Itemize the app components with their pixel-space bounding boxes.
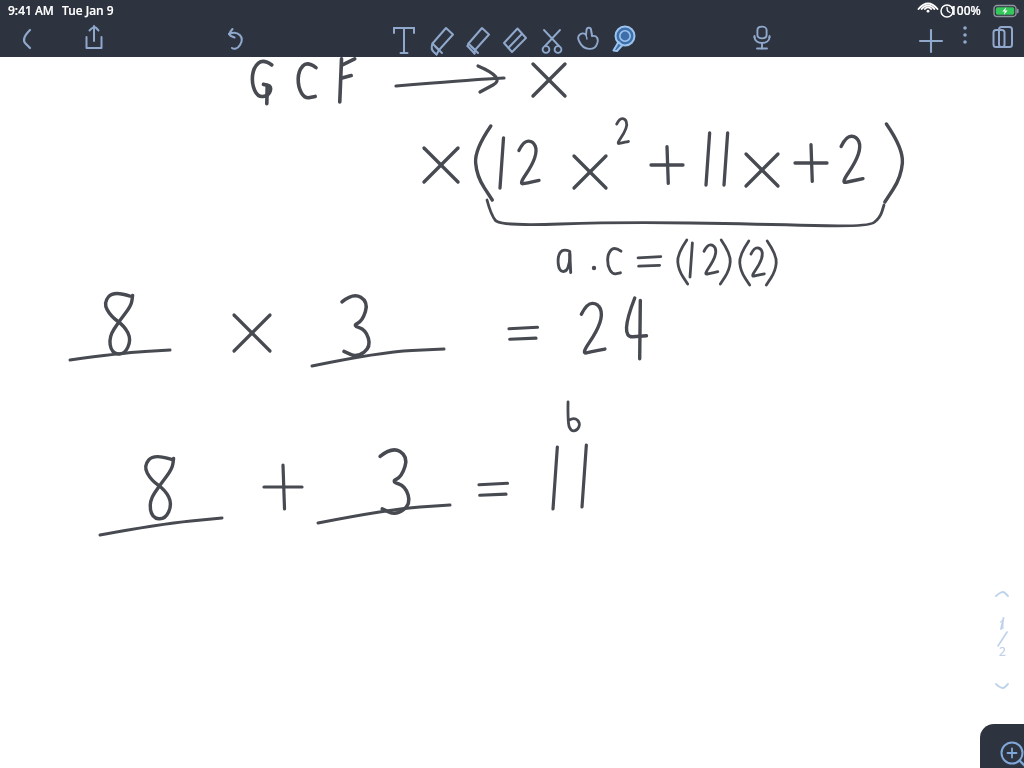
button[interactable]: Previous page — [986, 580, 1018, 608]
button[interactable]: Undo — [218, 22, 254, 58]
staticText: Tue Jan 9 — [62, 2, 114, 18]
staticText: 100% — [950, 2, 981, 18]
staticText: 9:41 AM — [8, 2, 54, 18]
button[interactable]: Back — [8, 22, 42, 56]
button[interactable]: Next page — [986, 674, 1018, 702]
button[interactable]: Add — [912, 22, 950, 60]
button[interactable]: Share — [76, 20, 112, 56]
staticText: 1 — [999, 616, 1006, 632]
staticText: 2 — [999, 643, 1006, 659]
button[interactable]: Cut — [534, 22, 570, 58]
button[interactable]: Highlighter — [460, 22, 498, 60]
button[interactable]: Eraser — [496, 22, 534, 60]
button[interactable]: Lasso — [570, 22, 606, 58]
button[interactable]: Pen — [424, 22, 462, 60]
button[interactable]: Page 1 of 2 — [986, 613, 1018, 663]
button[interactable]: Microphone — [744, 20, 780, 56]
button[interactable]: More options — [952, 22, 978, 48]
button[interactable]: Magnifier — [604, 20, 642, 58]
button[interactable]: Text tool — [386, 22, 422, 58]
button[interactable]: Zoom in — [980, 724, 1024, 768]
button[interactable]: Pages — [984, 20, 1020, 56]
